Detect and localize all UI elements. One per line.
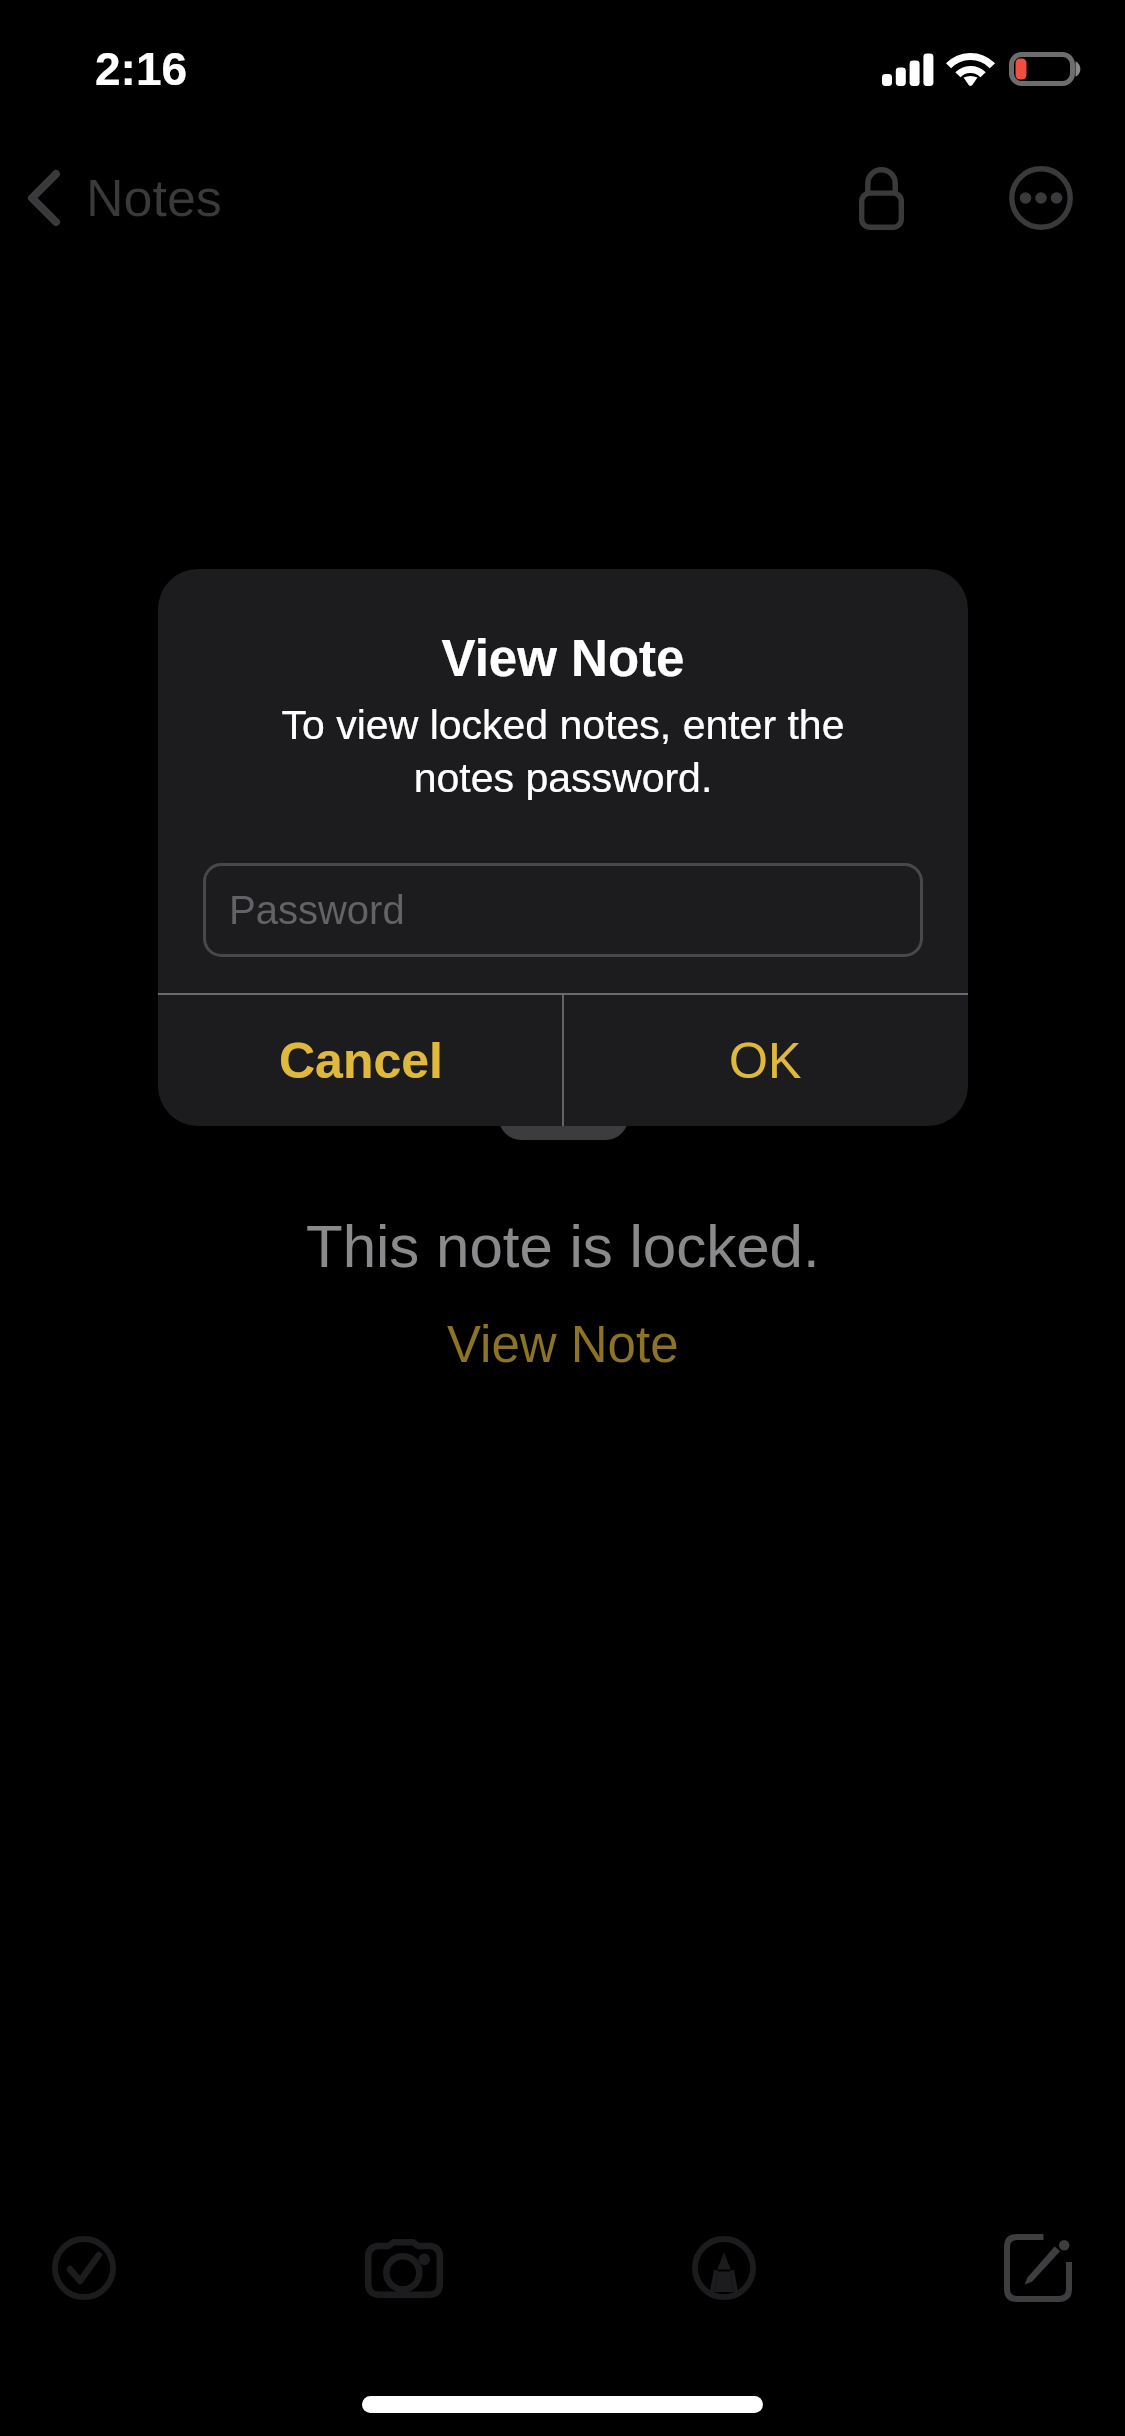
- button[interactable]: View Note: [429, 1312, 697, 1377]
- button[interactable]: Notes: [8, 150, 240, 246]
- button[interactable]: More options: [989, 146, 1093, 250]
- button[interactable]: Lock: [829, 146, 933, 250]
- button[interactable]: Camera: [348, 2212, 460, 2324]
- staticText: Notes: [86, 169, 222, 227]
- staticText: View Note: [158, 630, 968, 687]
- staticText: Password: [229, 888, 405, 933]
- button[interactable]: Password: [203, 863, 923, 957]
- button[interactable]: OK: [563, 995, 968, 1126]
- staticText: To view locked notes, enter the notes pa…: [258, 702, 868, 801]
- button[interactable]: Markup: [668, 2212, 780, 2324]
- staticText: This note is locked.: [306, 1213, 820, 1280]
- staticText: 2:16: [95, 43, 188, 94]
- button[interactable]: New note: [982, 2212, 1094, 2324]
- button[interactable]: Cancel: [158, 995, 563, 1126]
- button[interactable]: Checklist: [28, 2212, 140, 2324]
- staticText: View Note: [447, 1316, 679, 1373]
- staticText: Cancel: [279, 1033, 443, 1089]
- staticText: OK: [729, 1033, 802, 1089]
